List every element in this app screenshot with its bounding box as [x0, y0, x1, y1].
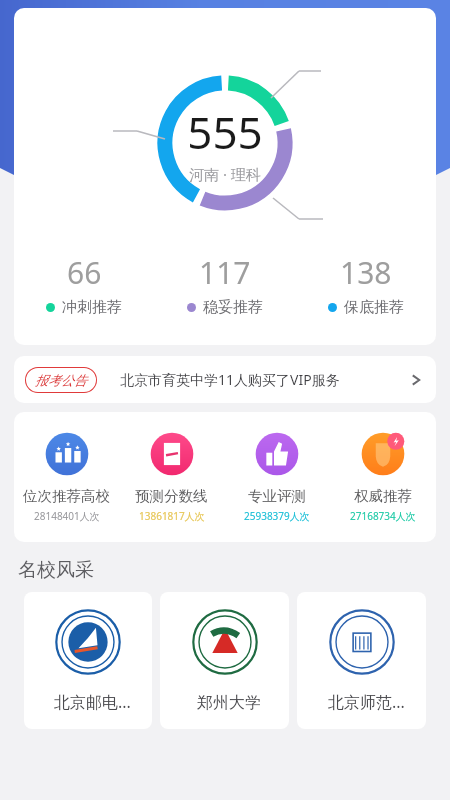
staticText: 北京市育英中学11人购买了VIP服务: [120, 370, 340, 389]
staticText: 稳妥推荐: [203, 298, 263, 317]
button[interactable]: 郑州大学: [160, 592, 289, 729]
button[interactable]: 权威推荐: [330, 428, 436, 523]
staticText: 28148401人次: [34, 509, 100, 523]
button[interactable]: 预测分数线: [119, 428, 224, 523]
staticText: 27168734人次: [350, 509, 416, 523]
staticText: 555: [187, 102, 263, 162]
staticText: 名校风采: [18, 558, 94, 582]
staticText: 权威推荐: [354, 487, 412, 505]
button[interactable]: 北京师范...: [297, 592, 426, 729]
button[interactable]: 专业评测: [224, 428, 330, 523]
staticText: 河南 · 理科: [189, 164, 261, 184]
button[interactable]: 报考公告: [14, 356, 436, 403]
other: More: [407, 371, 425, 389]
staticText: 66: [67, 252, 102, 293]
staticText: 北京师范...: [328, 691, 405, 713]
staticText: 保底推荐: [344, 298, 404, 317]
staticText: 北京邮电...: [54, 691, 131, 713]
button[interactable]: 北京邮电...: [24, 592, 152, 729]
staticText: 郑州大学: [197, 693, 261, 713]
staticText: 预测分数线: [135, 487, 208, 505]
staticText: 13861817人次: [139, 509, 205, 523]
staticText: 位次推荐高校: [23, 487, 110, 505]
staticText: 报考公告: [35, 372, 87, 388]
staticText: 专业评测: [248, 487, 306, 505]
staticText: 138: [340, 252, 392, 293]
staticText: 冲刺推荐: [62, 298, 122, 317]
staticText: 117: [199, 252, 251, 293]
staticText: 25938379人次: [244, 509, 310, 523]
button[interactable]: 位次推荐高校: [14, 428, 119, 523]
